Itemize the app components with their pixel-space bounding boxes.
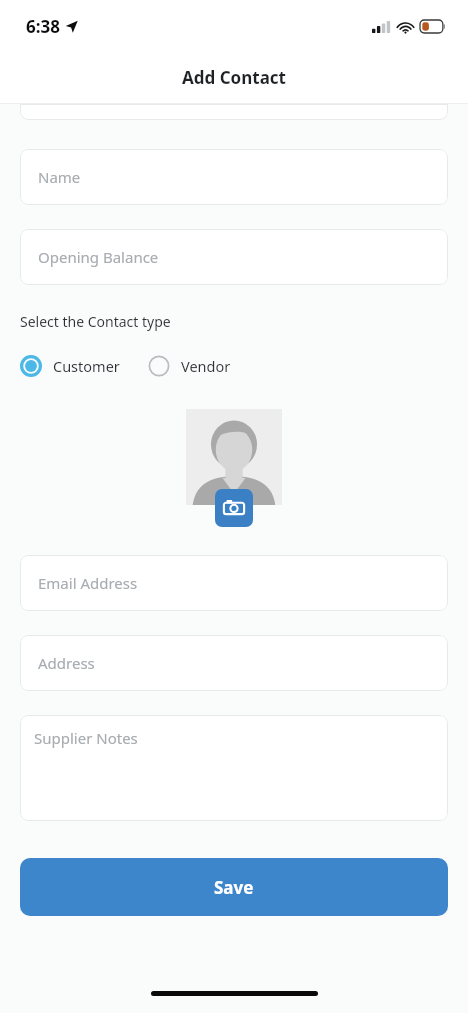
button[interactable]: Customer — [20, 353, 120, 379]
staticText: Select the Contact type — [20, 312, 171, 331]
button[interactable]: Vendor — [148, 353, 231, 379]
staticText: Address — [38, 653, 95, 673]
staticText: Supplier Notes — [34, 728, 138, 748]
button[interactable]: Email Address — [20, 555, 448, 611]
button[interactable]: Name — [20, 149, 448, 205]
button[interactable]: Change contact photo — [186, 409, 282, 527]
staticText: Name — [38, 167, 81, 187]
button[interactable]: Opening Balance — [20, 229, 448, 285]
staticText: Email Address — [38, 573, 138, 593]
button[interactable] — [20, 104, 448, 120]
staticText: Vendor — [181, 356, 231, 376]
staticText: Add Contact — [182, 66, 286, 89]
button[interactable]: Address — [20, 635, 448, 691]
staticText: Opening Balance — [38, 247, 159, 267]
button[interactable]: Supplier Notes — [20, 715, 448, 821]
staticText: 6:38 — [26, 15, 60, 38]
staticText: Customer — [53, 356, 120, 376]
button[interactable]: Save — [20, 858, 448, 916]
staticText: Save — [214, 876, 254, 899]
